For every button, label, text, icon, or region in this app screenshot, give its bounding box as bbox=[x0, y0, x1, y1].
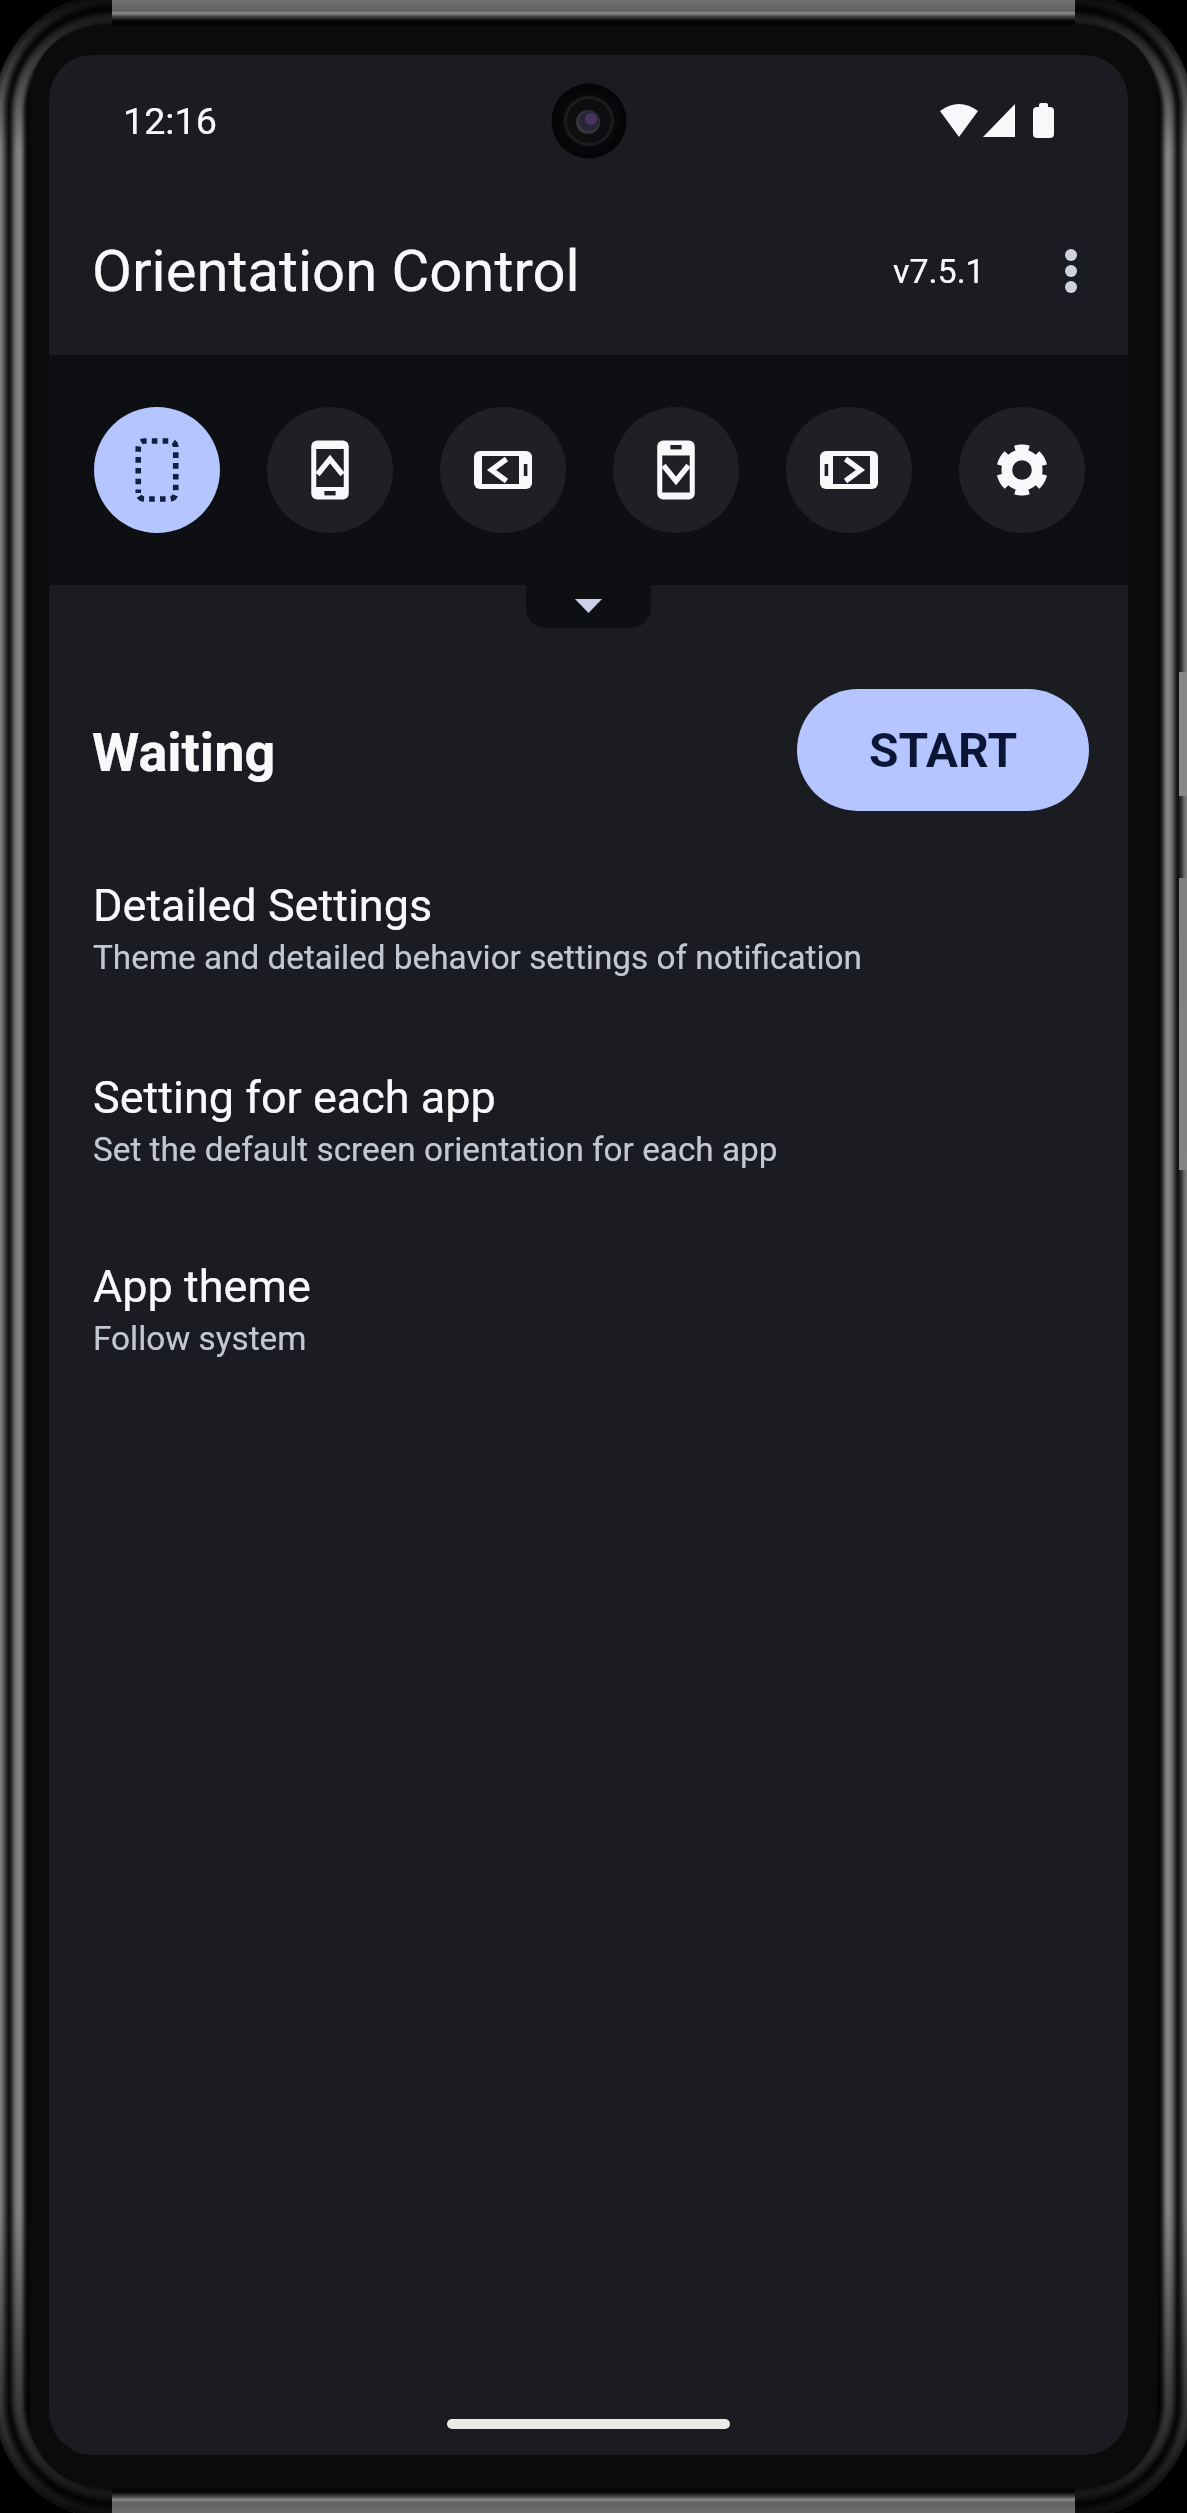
staticText: Follow system bbox=[93, 1319, 307, 1358]
staticText: Setting for each app bbox=[93, 1071, 496, 1124]
staticText: v7.5.1 bbox=[893, 251, 985, 291]
button[interactable]: App theme bbox=[49, 1260, 1128, 1358]
button[interactable]: Landscape bbox=[786, 407, 912, 533]
button[interactable]: Settings bbox=[959, 407, 1085, 533]
staticText: Waiting bbox=[92, 721, 276, 784]
button[interactable]: Reverse portrait bbox=[613, 407, 739, 533]
button[interactable]: START bbox=[797, 689, 1089, 811]
staticText: Theme and detailed behavior settings of … bbox=[93, 938, 862, 977]
button[interactable]: Portrait bbox=[267, 407, 393, 533]
staticText: Detailed Settings bbox=[93, 879, 433, 932]
button[interactable]: Unspecified orientation bbox=[94, 407, 220, 533]
staticText: START bbox=[869, 722, 1018, 778]
button[interactable]: Collapse bbox=[526, 585, 651, 628]
staticText: Set the default screen orientation for e… bbox=[93, 1130, 778, 1169]
staticText: App theme bbox=[93, 1260, 311, 1313]
staticText: Orientation Control bbox=[92, 237, 580, 305]
button[interactable]: Setting for each app bbox=[49, 1071, 1128, 1169]
button[interactable]: More options bbox=[1027, 227, 1115, 315]
staticText: 12:16 bbox=[123, 99, 217, 143]
button[interactable]: Detailed Settings bbox=[49, 879, 1128, 977]
button[interactable]: Reverse landscape bbox=[440, 407, 566, 533]
